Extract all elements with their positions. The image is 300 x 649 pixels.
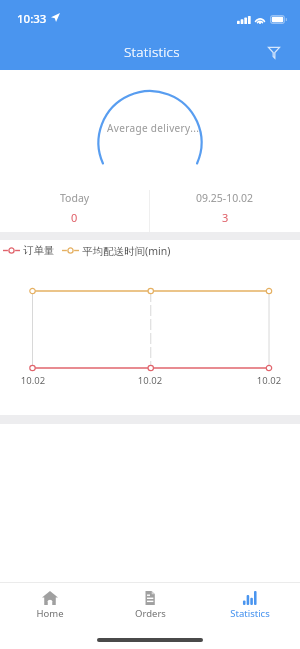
button[interactable]: 09.25-10.02 <box>150 190 300 225</box>
staticText: 3 <box>222 210 229 225</box>
staticText: Statistics <box>124 43 180 61</box>
staticText: 订单量 <box>23 244 55 257</box>
staticText: Orders <box>135 607 166 620</box>
staticText: 10.02 <box>20 374 46 387</box>
staticText: 09.25-10.02 <box>196 191 254 205</box>
staticText: Average delivery... <box>107 121 200 135</box>
button[interactable]: Today <box>0 190 149 225</box>
button[interactable]: Home <box>0 583 100 620</box>
staticText: Home <box>36 607 64 620</box>
staticText: 10.02 <box>137 374 163 387</box>
staticText: Today <box>60 191 90 205</box>
staticText: 10:33 <box>17 11 47 27</box>
staticText: 0 <box>71 210 78 225</box>
button[interactable]: Filter <box>261 39 287 65</box>
button[interactable]: Statistics <box>200 583 300 620</box>
button[interactable]: Orders <box>100 583 200 620</box>
staticText: 10.02 <box>256 374 282 387</box>
staticText: Statistics <box>230 607 270 620</box>
staticText: 平均配送时间(min) <box>82 244 171 258</box>
